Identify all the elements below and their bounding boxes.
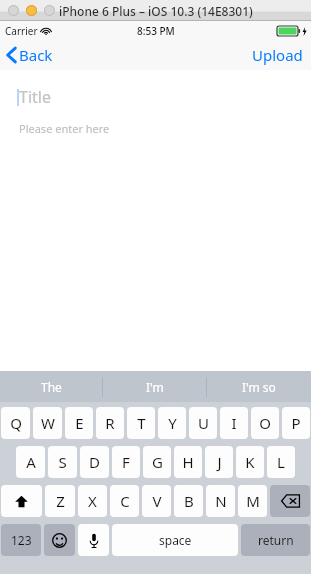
button[interactable]: A (16, 446, 45, 478)
button[interactable]: P (282, 407, 310, 439)
staticText: K (245, 452, 255, 472)
button[interactable]: Y (158, 407, 186, 439)
staticText: P (291, 413, 301, 433)
staticText: X (88, 491, 97, 511)
staticText: B (184, 491, 194, 511)
button[interactable]: return (241, 524, 310, 556)
button[interactable]: Close (8, 5, 19, 16)
button[interactable]: N (206, 485, 235, 517)
button[interactable]: D (80, 446, 109, 478)
staticText: S (58, 452, 67, 472)
staticText: W (41, 413, 55, 433)
staticText: U (198, 413, 209, 433)
button[interactable]: X (78, 485, 107, 517)
button[interactable]: H (174, 446, 202, 478)
button[interactable]: Upload (244, 40, 311, 70)
staticText: F (122, 452, 130, 472)
staticText: space (159, 532, 192, 548)
staticText: Please enter here (19, 121, 110, 136)
staticText: I'm (146, 379, 164, 395)
button[interactable]: 123 (1, 524, 41, 556)
button[interactable]: F (112, 446, 140, 478)
button[interactable]: E (65, 407, 93, 439)
staticText: L (277, 452, 285, 472)
staticText: Carrier (5, 24, 38, 38)
button[interactable]: O (251, 407, 279, 439)
button[interactable]: space (112, 524, 238, 556)
staticText: R (105, 413, 115, 433)
button[interactable]: T (127, 407, 155, 439)
staticText: H (182, 452, 194, 472)
button[interactable]: L (267, 446, 295, 478)
button[interactable]: I (220, 407, 248, 439)
staticText: iPhone 6 Plus – iOS 10.3 (14E8301) (59, 3, 253, 19)
staticText: C (120, 491, 130, 511)
staticText: I'm so (242, 379, 276, 395)
button[interactable]: Back (0, 40, 61, 70)
button[interactable]: Zoom (44, 5, 55, 16)
button[interactable]: Dictation (78, 524, 109, 556)
staticText: Z (56, 491, 65, 511)
staticText: N (215, 491, 227, 511)
button[interactable]: C (110, 485, 139, 517)
button[interactable]: Z (45, 485, 75, 517)
button[interactable]: I'm so (207, 371, 311, 402)
staticText: Upload (252, 45, 303, 65)
staticText: The (41, 379, 62, 395)
staticText: V (152, 491, 162, 511)
button[interactable]: J (205, 446, 233, 478)
staticText: Q (10, 413, 22, 433)
staticText: Title (19, 86, 51, 108)
button[interactable]: Shift (1, 485, 42, 517)
staticText: O (259, 413, 271, 433)
staticText: Back (19, 45, 53, 65)
staticText: G (152, 452, 163, 472)
button[interactable]: Emoji (44, 524, 75, 556)
staticText: A (26, 452, 36, 472)
button[interactable]: Backspace (270, 485, 310, 517)
button[interactable]: G (143, 446, 171, 478)
button[interactable]: Q (1, 407, 30, 439)
button[interactable]: U (189, 407, 217, 439)
button[interactable]: I'm (103, 371, 207, 402)
button[interactable]: V (142, 485, 171, 517)
staticText: 8:53 PM (137, 24, 175, 38)
staticText: M (246, 491, 260, 511)
button[interactable]: R (96, 407, 124, 439)
staticText: J (217, 452, 222, 472)
staticText: I (231, 413, 237, 433)
staticText: return (258, 532, 294, 548)
button[interactable]: W (33, 407, 62, 439)
staticText: 123 (11, 532, 32, 548)
staticText: T (137, 413, 146, 433)
button[interactable]: M (238, 485, 267, 517)
staticText: D (89, 452, 100, 472)
staticText: Y (168, 413, 177, 433)
staticText: E (75, 413, 84, 433)
button[interactable]: Title (0, 85, 311, 109)
button[interactable]: The (0, 371, 103, 402)
button[interactable]: K (236, 446, 264, 478)
button[interactable]: Minimize (26, 5, 37, 16)
button[interactable]: S (48, 446, 77, 478)
button[interactable]: B (174, 485, 203, 517)
